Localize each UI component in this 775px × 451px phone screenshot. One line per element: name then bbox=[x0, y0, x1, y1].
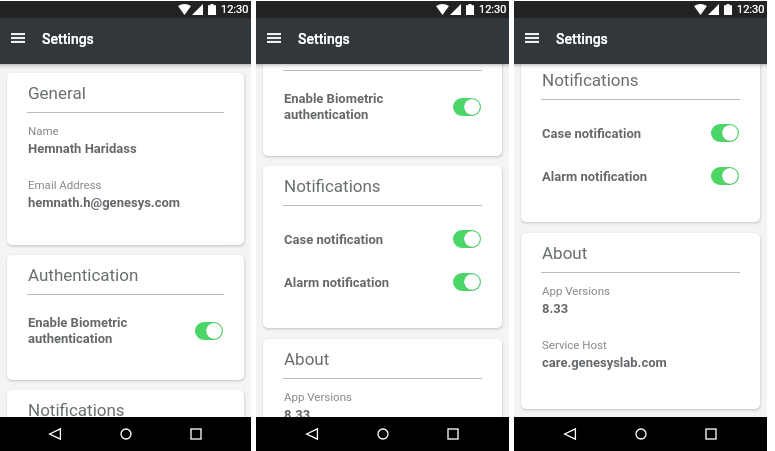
button[interactable]: Back bbox=[40, 419, 70, 449]
staticText: Alarm notification bbox=[284, 275, 453, 290]
staticText: Hemnath Haridass bbox=[28, 141, 137, 156]
staticText: 8.33 bbox=[284, 407, 311, 417]
button[interactable]: Open navigation menu bbox=[519, 25, 545, 51]
staticText: Enable Biometric authentication bbox=[284, 91, 453, 122]
staticText: care.genesyslab.com bbox=[542, 355, 667, 370]
button[interactable]: Recent apps bbox=[438, 419, 468, 449]
staticText: Settings bbox=[556, 31, 608, 47]
staticText: 12:30 bbox=[221, 3, 249, 16]
staticText: About bbox=[542, 243, 588, 263]
button[interactable]: Home bbox=[111, 419, 141, 449]
staticText: About bbox=[284, 349, 330, 369]
staticText: Settings bbox=[298, 31, 350, 47]
button[interactable]: Alarm notification bbox=[283, 273, 482, 291]
staticText: 8.33 bbox=[542, 301, 569, 316]
staticText: Case notification bbox=[284, 232, 453, 247]
staticText: App Versions bbox=[542, 284, 610, 297]
staticText: Notifications bbox=[542, 70, 639, 90]
button[interactable]: Home bbox=[626, 419, 656, 449]
button[interactable]: Case notification bbox=[283, 230, 482, 248]
staticText: Service Host bbox=[542, 338, 607, 351]
staticText: Name bbox=[28, 124, 59, 137]
button[interactable]: Back bbox=[297, 419, 327, 449]
button[interactable]: Home bbox=[368, 419, 398, 449]
staticText: hemnath.h@genesys.com bbox=[28, 195, 181, 210]
button[interactable]: Case notification bbox=[541, 124, 740, 142]
staticText: Email Address bbox=[28, 178, 102, 191]
button[interactable]: Open navigation menu bbox=[261, 25, 287, 51]
button[interactable]: Enable Biometric authentication bbox=[27, 315, 224, 346]
button[interactable]: Open navigation menu bbox=[5, 25, 31, 51]
staticText: Alarm notification bbox=[542, 169, 711, 184]
button[interactable]: Back bbox=[555, 419, 585, 449]
staticText: Enable Biometric authentication bbox=[28, 315, 195, 346]
staticText: Notifications bbox=[284, 176, 381, 196]
staticText: Notifications bbox=[28, 400, 125, 417]
staticText: 12:30 bbox=[737, 3, 765, 16]
staticText: General bbox=[28, 83, 86, 103]
staticText: Case notification bbox=[542, 126, 711, 141]
button[interactable]: Recent apps bbox=[181, 419, 211, 449]
staticText: 12:30 bbox=[479, 3, 507, 16]
staticText: App Versions bbox=[284, 390, 352, 403]
button[interactable]: Recent apps bbox=[696, 419, 726, 449]
button[interactable]: Enable Biometric authentication bbox=[283, 91, 482, 122]
button[interactable]: Alarm notification bbox=[541, 167, 740, 185]
staticText: Authentication bbox=[28, 265, 139, 285]
staticText: Settings bbox=[42, 31, 94, 47]
